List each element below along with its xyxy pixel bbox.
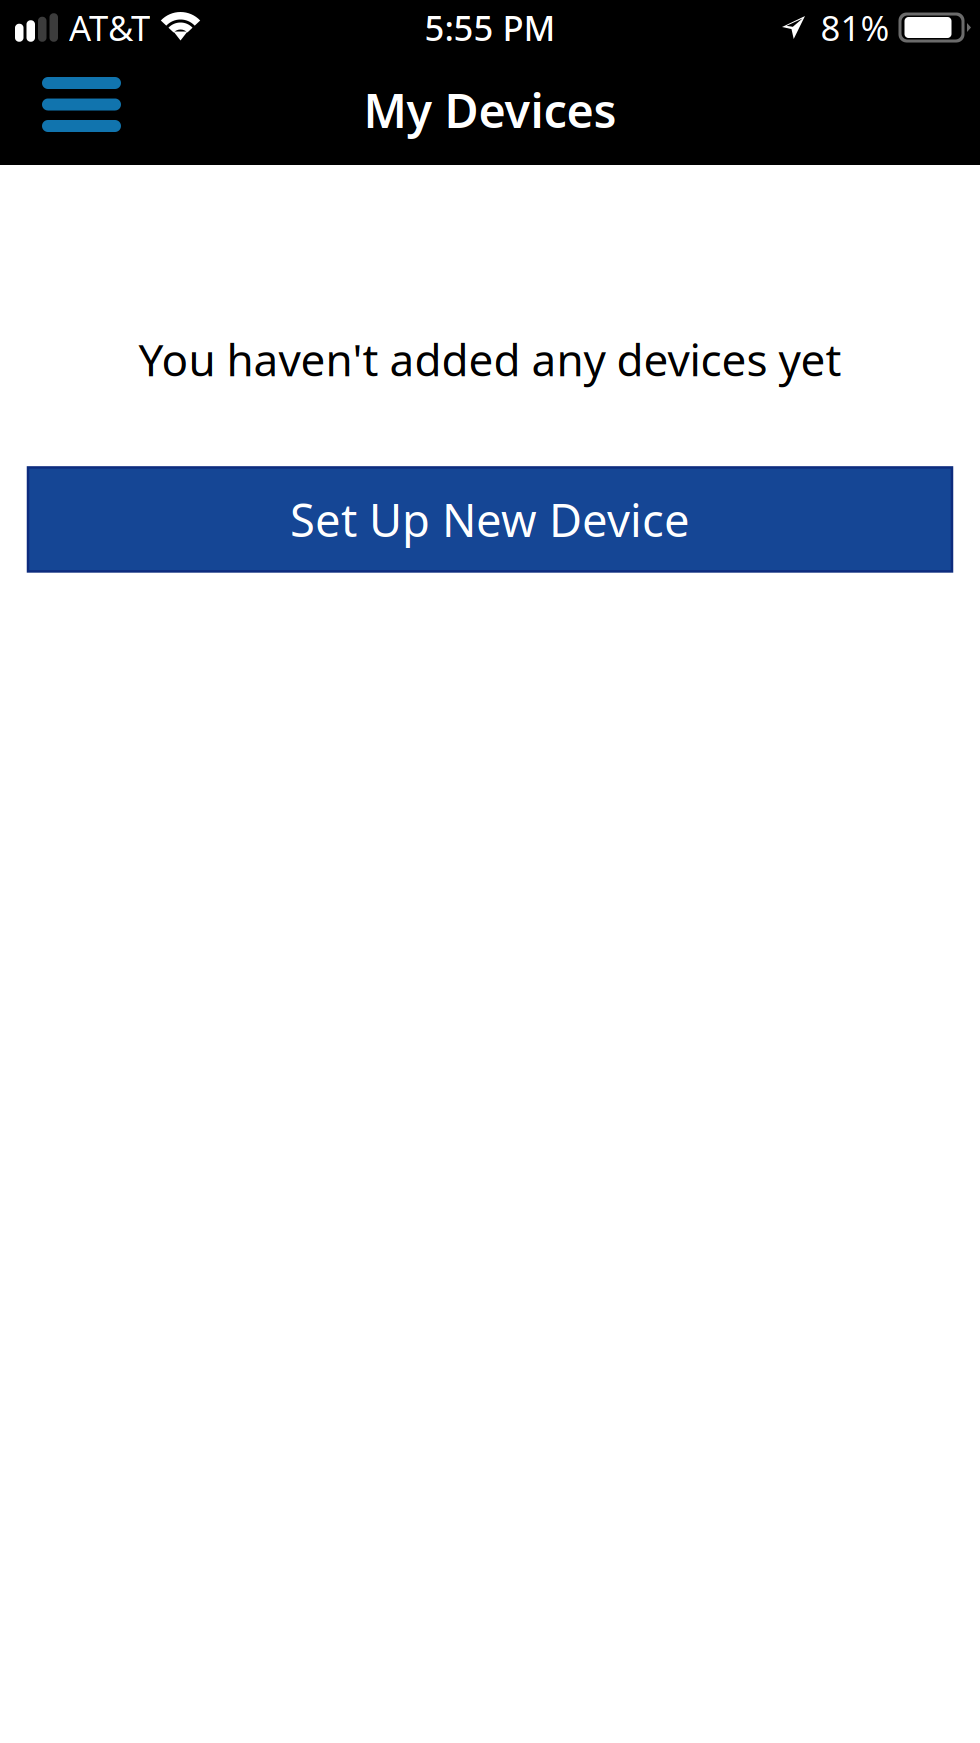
staticText: 81% — [820, 4, 889, 50]
staticText: My Devices — [363, 79, 616, 141]
button[interactable]: Menu — [0, 65, 147, 155]
staticText: You haven't added any devices yet — [138, 330, 841, 388]
staticText: Set Up New Device — [290, 489, 690, 549]
staticText: 5:55 PM — [424, 4, 555, 50]
staticText: AT&T — [69, 4, 150, 50]
button[interactable]: Set Up New Device — [28, 467, 952, 571]
